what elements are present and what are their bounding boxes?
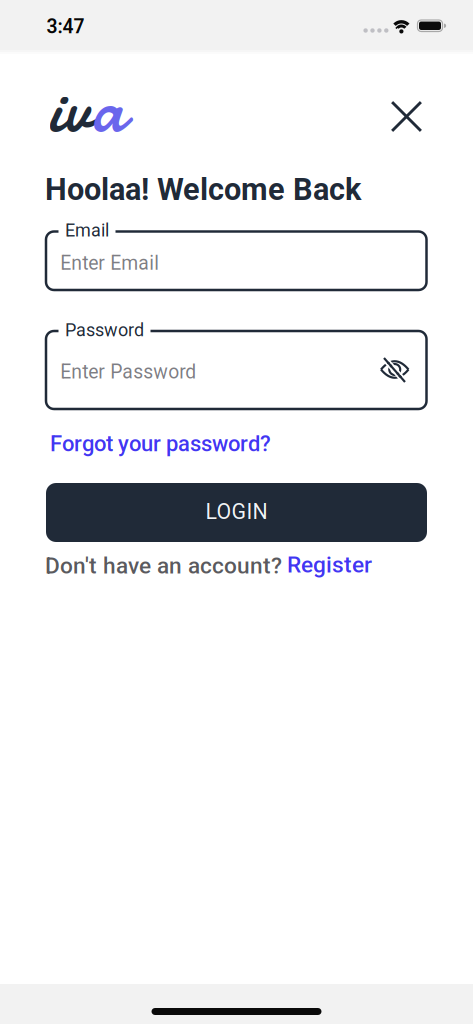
button[interactable] (381, 359, 409, 380)
staticText: Enter Password (60, 360, 196, 383)
staticText: a (92, 61, 125, 156)
staticText: LOGIN (205, 499, 267, 524)
button[interactable]: Register (287, 551, 372, 578)
staticText: 3:47 (46, 15, 84, 38)
staticText: Hoolaa! Welcome Back (45, 171, 361, 207)
button[interactable]: Email (46, 220, 427, 290)
staticText: Register (287, 551, 372, 578)
staticText: Password (65, 320, 144, 341)
staticText: Forgot your password? (50, 431, 271, 457)
button[interactable]: Password (46, 320, 427, 409)
staticText: Don't have an account? (45, 552, 282, 579)
staticText: Email (65, 220, 109, 241)
button[interactable]: Forgot your password? (50, 431, 271, 457)
button[interactable]: LOGIN (46, 483, 427, 542)
staticText: iv (48, 61, 91, 156)
button[interactable] (391, 101, 421, 131)
staticText: Enter Email (60, 252, 159, 274)
